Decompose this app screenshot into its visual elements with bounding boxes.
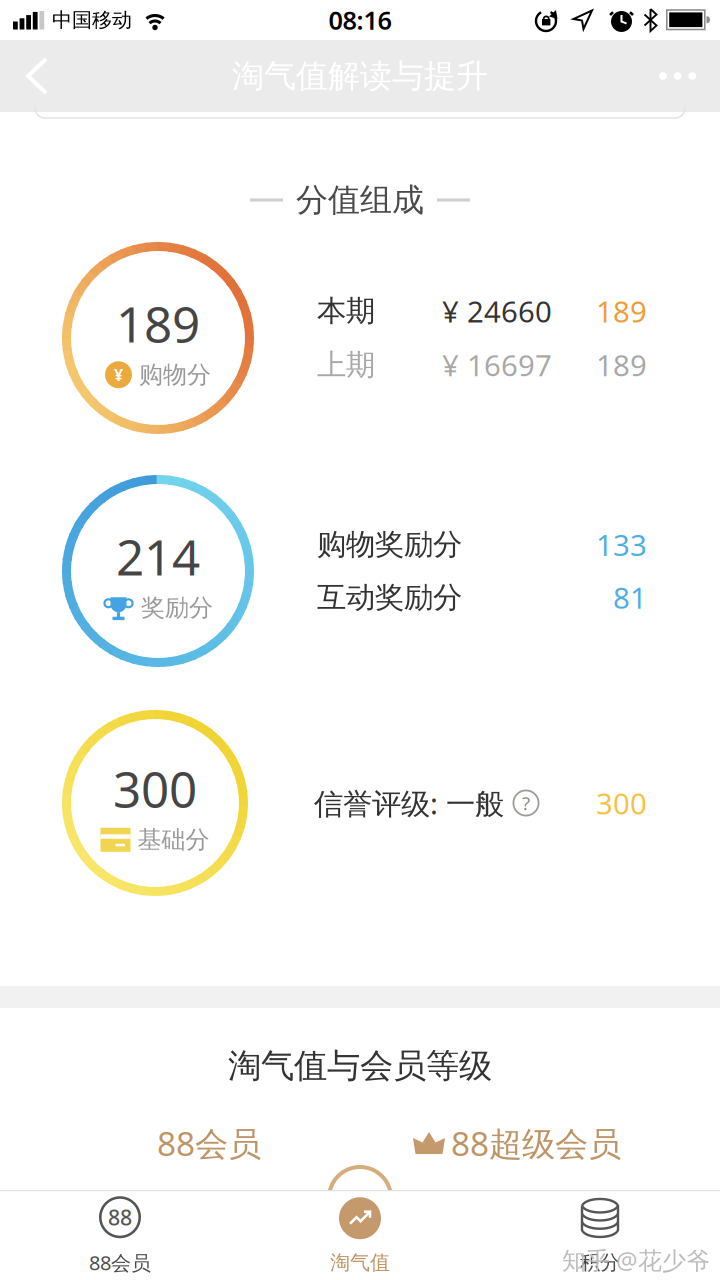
button[interactable]: 积分 xyxy=(480,1190,720,1280)
staticText: ¥ 24660 xyxy=(442,291,552,330)
staticText: 300 xyxy=(113,755,197,821)
button[interactable]: 淘气值 xyxy=(240,1190,480,1280)
button[interactable]: Back xyxy=(0,40,70,112)
staticText: ¥ xyxy=(114,364,123,385)
staticText: 88 xyxy=(108,1203,132,1231)
staticText: 奖励分 xyxy=(141,593,213,622)
staticText: 189 xyxy=(116,290,200,356)
staticText: 分值组成 xyxy=(296,180,424,220)
staticText: 本期 xyxy=(317,293,375,329)
staticText: 214 xyxy=(116,523,200,589)
staticText: 88会员 xyxy=(89,1249,151,1276)
staticText: 基础分 xyxy=(137,825,209,854)
staticText: 08:16 xyxy=(328,3,391,37)
staticText: 信誉评级: 一般 xyxy=(314,783,504,822)
staticText: 购物分 xyxy=(139,360,211,389)
staticText: 189 xyxy=(596,291,647,330)
staticText: 知乎 @花少爷 xyxy=(562,1244,710,1276)
staticText: 积分 xyxy=(580,1250,620,1275)
staticText: 300 xyxy=(596,783,647,822)
staticText: 中国移动 xyxy=(52,8,132,32)
staticText: ¥ 16697 xyxy=(442,345,552,384)
button[interactable]: 88 xyxy=(0,1190,240,1280)
staticText: 88超级会员 xyxy=(451,1121,621,1165)
staticText: 淘气值与会员等级 xyxy=(228,1045,492,1086)
staticText: 189 xyxy=(596,345,647,384)
staticText: 淘气值解读与提升 xyxy=(232,56,488,96)
staticText: 88会员 xyxy=(157,1121,261,1165)
staticText: 购物奖励分 xyxy=(317,526,462,562)
staticText: 81 xyxy=(613,578,647,617)
staticText: 互动奖励分 xyxy=(317,579,462,615)
staticText: 淘气值 xyxy=(330,1250,390,1275)
staticText: 上期 xyxy=(317,347,375,383)
staticText: ? xyxy=(522,791,530,815)
button[interactable]: Help xyxy=(504,789,540,817)
staticText: 133 xyxy=(596,525,647,564)
